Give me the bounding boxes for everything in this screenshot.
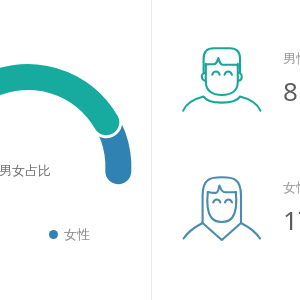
staticText: 男性 bbox=[283, 50, 300, 66]
staticText: 男女占比 bbox=[0, 162, 51, 178]
staticText: 8 bbox=[283, 73, 298, 108]
staticText: 17 bbox=[283, 202, 300, 237]
staticText: 女性 bbox=[64, 226, 90, 242]
staticText: 女性 bbox=[283, 179, 300, 195]
